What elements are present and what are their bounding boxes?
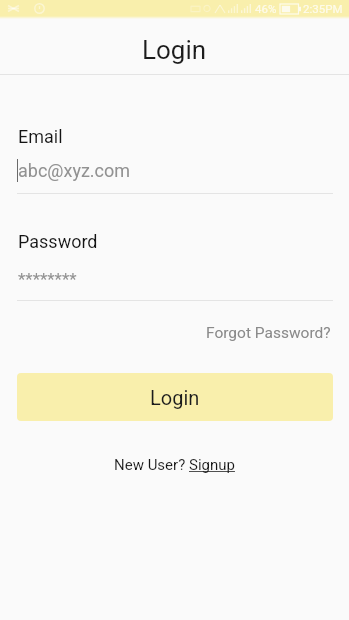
button[interactable]: abc@xyz.com	[17, 154, 333, 186]
button[interactable]: Login	[17, 373, 333, 421]
staticText: abc@xyz.com	[18, 160, 131, 181]
staticText: 46%	[255, 2, 277, 15]
button[interactable]: ********	[17, 262, 333, 294]
other: Silent mode	[7, 3, 20, 14]
button[interactable]: Forgot Password?	[206, 321, 331, 345]
staticText: 2:35PM	[303, 2, 343, 15]
staticText: New User?	[114, 456, 189, 474]
staticText: ********	[18, 269, 77, 289]
button[interactable]: Signup	[189, 456, 235, 474]
staticText: Login	[150, 386, 200, 409]
staticText: Password	[18, 231, 98, 252]
other: Do not disturb	[34, 3, 45, 14]
staticText: Email	[18, 126, 63, 147]
staticText: Login	[142, 35, 207, 65]
